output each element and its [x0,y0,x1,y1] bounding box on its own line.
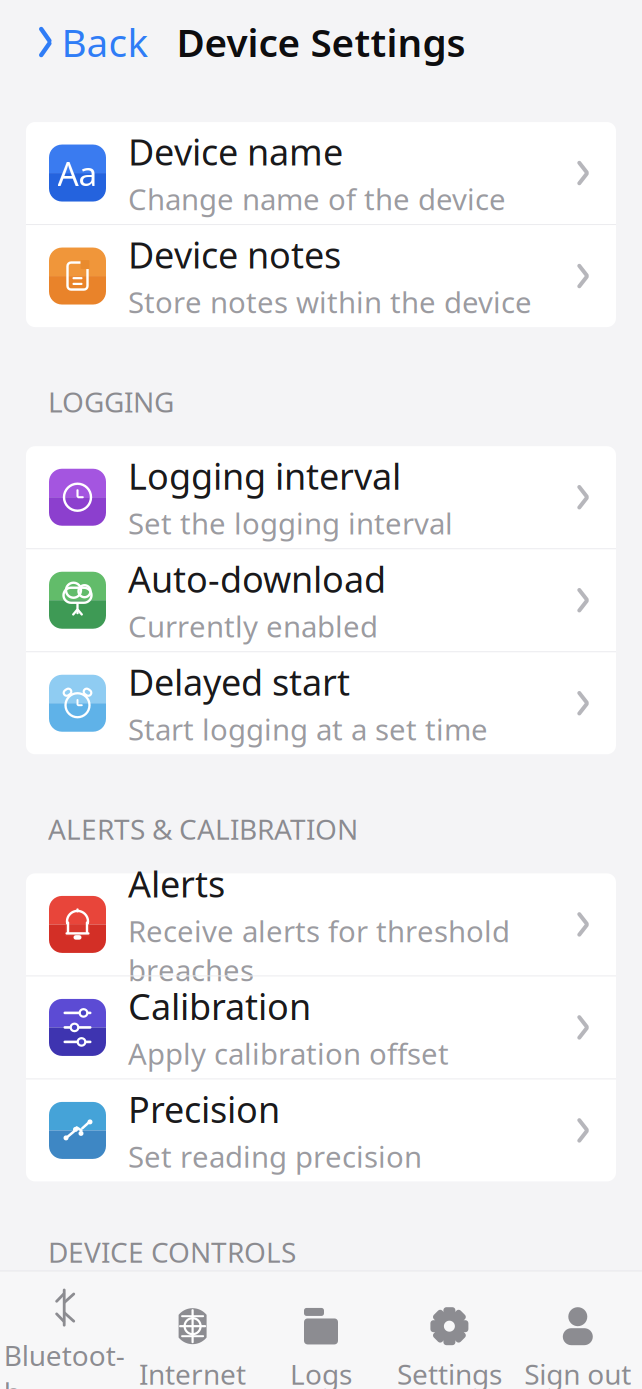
button[interactable]: Delayed start [26,652,616,754]
button[interactable]: Aa [26,122,616,224]
staticText: Sign out [524,1355,631,1389]
button[interactable]: Auto-download [26,549,616,651]
staticText: Device name [128,128,343,175]
staticText: Alerts [128,860,225,907]
staticText: Bluetooth [4,1337,125,1389]
staticText: DEVICE CONTROLS [48,1233,296,1271]
staticText: Aa [57,151,97,195]
button[interactable]: Logging interval [26,446,616,548]
staticText: Logs [290,1355,352,1389]
staticText: Settings [397,1355,502,1389]
staticText: Auto-download [128,555,386,603]
staticText: Receive alerts for threshold breaches [128,911,510,989]
button[interactable]: Internet [128,1290,257,1389]
button[interactable]: Sign out [514,1290,642,1389]
button[interactable]: Calibration [26,976,616,1078]
staticText: Internet [139,1355,246,1389]
staticText: Set the logging interval [128,504,453,543]
staticText: LOGGING [48,383,174,420]
staticText: Start logging at a set time [128,710,488,749]
staticText: Apply calibration offset [128,1034,449,1073]
button[interactable]: Bluetooth [0,1272,128,1389]
staticText: Device Settings [176,16,465,68]
staticText: Store notes within the device [128,282,532,321]
staticText: Set reading precision [128,1137,422,1176]
button[interactable]: Settings [385,1290,514,1389]
staticText: Device notes [128,231,341,278]
button[interactable]: Back [26,4,159,80]
staticText: Precision [128,1085,280,1133]
staticText: Delayed start [128,658,350,706]
staticText: Logging interval [128,452,401,500]
staticText: Back [62,16,149,68]
button[interactable]: Alerts [26,873,616,975]
staticText: Change name of the device [128,179,506,218]
button[interactable]: Precision [26,1079,616,1181]
staticText: Calibration [128,982,311,1030]
button[interactable]: Device notes [26,225,616,327]
staticText: ALERTS & CALIBRATION [48,810,358,847]
button[interactable]: Logs [257,1290,385,1389]
staticText: Currently enabled [128,607,378,646]
